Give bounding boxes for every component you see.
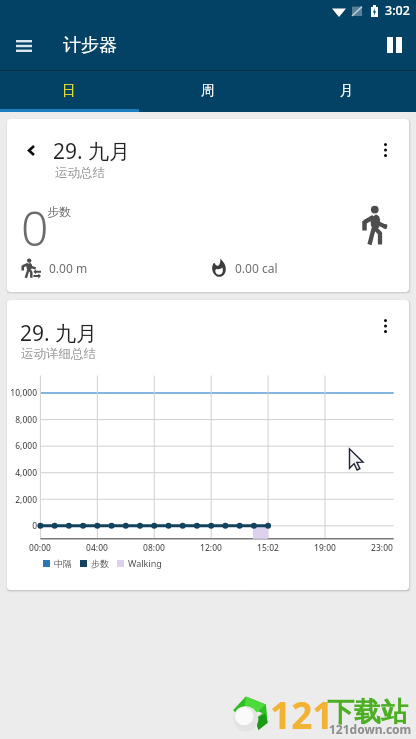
button[interactable]: 日 [0, 71, 138, 112]
staticText: 0.00 m [49, 260, 88, 276]
staticText: 0 [21, 195, 49, 260]
staticText: 08:00 [140, 542, 168, 554]
staticText: 19:00 [311, 542, 339, 554]
staticText: 步数 [91, 558, 109, 569]
staticText: 04:00 [83, 542, 111, 554]
staticText: 0.00 cal [235, 260, 278, 276]
staticText: 12:00 [197, 542, 225, 554]
staticText: 中隔 [54, 558, 72, 569]
button[interactable]: More options [370, 135, 400, 165]
staticText: 日 [62, 82, 76, 99]
staticText: 0 [7, 520, 37, 532]
staticText: 月 [340, 82, 354, 99]
staticText: 8,000 [7, 414, 37, 426]
staticText: 计步器 [63, 34, 117, 57]
staticText: 3:02 [385, 2, 410, 19]
staticText: 运动总结 [55, 165, 105, 181]
staticText: Walking [128, 557, 162, 569]
staticText: 23:00 [368, 542, 396, 554]
staticText: 步数 [47, 204, 71, 219]
button[interactable]: Open navigation menu [8, 29, 40, 63]
staticText: 15:02 [254, 542, 282, 554]
staticText: 4,000 [7, 467, 37, 479]
button[interactable]: 周 [138, 71, 277, 112]
button[interactable]: More options [370, 311, 400, 341]
button[interactable]: 月 [277, 71, 416, 112]
staticText: 29. 九月 [53, 137, 131, 166]
staticText: 121down.com [329, 721, 412, 737]
staticText: 121 [270, 689, 334, 739]
staticText: 6,000 [7, 440, 37, 452]
staticText: 2,000 [7, 494, 37, 506]
button[interactable]: Pause [376, 27, 412, 63]
staticText: 00:00 [26, 542, 54, 554]
staticText: 10,000 [7, 387, 37, 399]
staticText: 运动详细总结 [21, 346, 96, 362]
staticText: 29. 九月 [20, 319, 98, 348]
staticText: 下载站 [327, 695, 408, 729]
staticText: 周 [201, 82, 215, 99]
button[interactable]: Previous day [19, 138, 43, 162]
